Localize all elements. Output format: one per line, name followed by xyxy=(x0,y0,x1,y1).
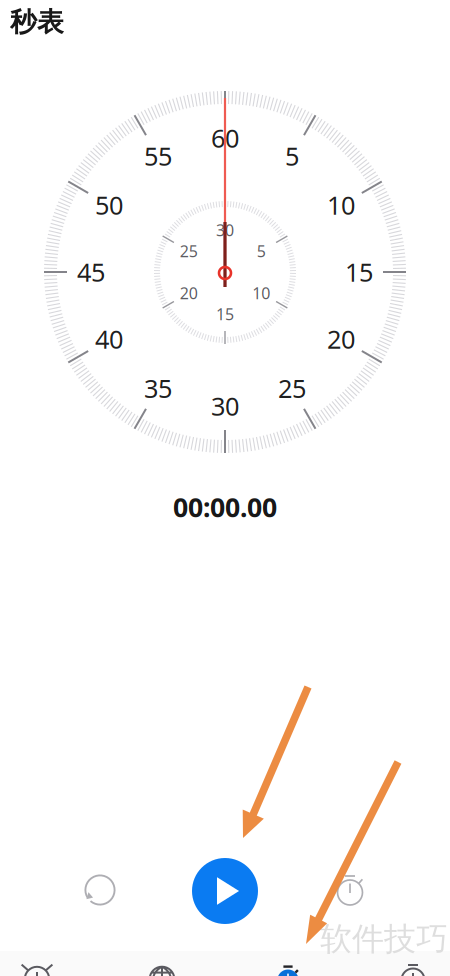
staticText: 60 xyxy=(211,121,239,155)
staticText: 50 xyxy=(95,188,123,222)
staticText: 5 xyxy=(285,139,299,173)
staticText: 30 xyxy=(216,219,234,241)
button[interactable]: 计时器 xyxy=(357,951,450,976)
staticText: 5 xyxy=(257,240,266,262)
staticText: 40 xyxy=(95,322,123,356)
staticText: 55 xyxy=(144,139,172,173)
staticText: 20 xyxy=(327,322,355,356)
staticText: 软件技巧 xyxy=(320,919,448,959)
staticText: 00:00.00 xyxy=(173,489,277,525)
button[interactable]: 重置 xyxy=(72,862,128,918)
button[interactable]: 开始 xyxy=(192,858,258,924)
staticText: 25 xyxy=(180,240,198,262)
button[interactable]: 计次 xyxy=(322,862,378,918)
staticText: 秒表 xyxy=(10,6,64,38)
staticText: 10 xyxy=(252,282,270,304)
button[interactable]: 秒表 xyxy=(232,951,344,976)
staticText: 20 xyxy=(180,282,198,304)
staticText: 35 xyxy=(144,371,172,405)
button[interactable]: 闹钟 xyxy=(0,951,93,976)
staticText: 15 xyxy=(345,255,373,289)
button[interactable]: 世界时钟 xyxy=(106,951,218,976)
staticText: 45 xyxy=(77,255,105,289)
staticText: 15 xyxy=(216,303,234,325)
staticText: 30 xyxy=(211,389,239,423)
staticText: 25 xyxy=(278,371,306,405)
staticText: 10 xyxy=(327,188,355,222)
